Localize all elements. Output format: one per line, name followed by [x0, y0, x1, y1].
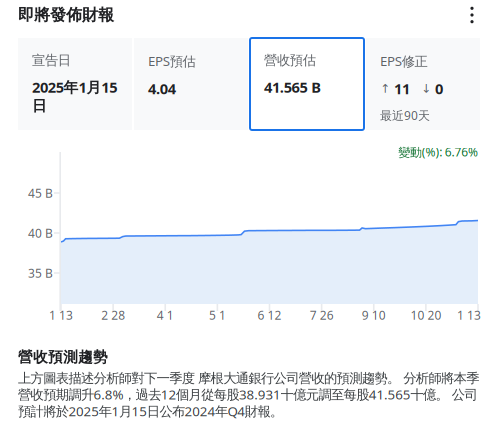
- staticText: 9 10: [362, 307, 386, 323]
- staticText: 1 13: [457, 307, 481, 323]
- staticText: 11: [394, 79, 410, 98]
- staticText: 10 20: [410, 307, 441, 323]
- button[interactable]: EPS修正: [366, 38, 480, 130]
- staticText: 上方圖表描述分析師對下一季度 摩根大通銀行公司營收的預測趨勢。 分析師將本季營收…: [18, 370, 479, 420]
- button[interactable]: 營收預估: [250, 38, 364, 130]
- staticText: EPS修正: [380, 52, 428, 70]
- staticText: ↓: [421, 82, 431, 95]
- staticText: 最近90天: [380, 107, 430, 123]
- staticText: 35 B: [28, 265, 53, 281]
- button[interactable]: 宣告日: [18, 38, 132, 130]
- staticText: 2 28: [101, 307, 125, 323]
- staticText: 7 26: [310, 307, 334, 323]
- staticText: 4 1: [157, 307, 174, 323]
- staticText: 6 12: [257, 307, 281, 323]
- button[interactable]: 更多選項: [457, 0, 487, 30]
- staticText: 0: [435, 79, 443, 98]
- staticText: 變動(%): 6.76%: [398, 144, 478, 160]
- staticText: 宣告日: [32, 52, 71, 68]
- staticText: 41.565 B: [264, 77, 321, 97]
- staticText: 40 B: [28, 225, 53, 241]
- button[interactable]: EPS預估: [134, 38, 248, 130]
- staticText: ↑: [380, 82, 390, 95]
- staticText: 45 B: [28, 185, 53, 201]
- staticText: 營收預測趨勢: [18, 348, 108, 366]
- staticText: 4.04: [148, 79, 176, 98]
- staticText: 即將發佈財報: [18, 5, 114, 25]
- staticText: 5 1: [209, 307, 226, 323]
- staticText: EPS預估: [148, 52, 196, 70]
- staticText: 2025年1月15日: [32, 77, 117, 115]
- staticText: 營收預估: [264, 52, 316, 68]
- staticText: 1 13: [49, 307, 73, 323]
